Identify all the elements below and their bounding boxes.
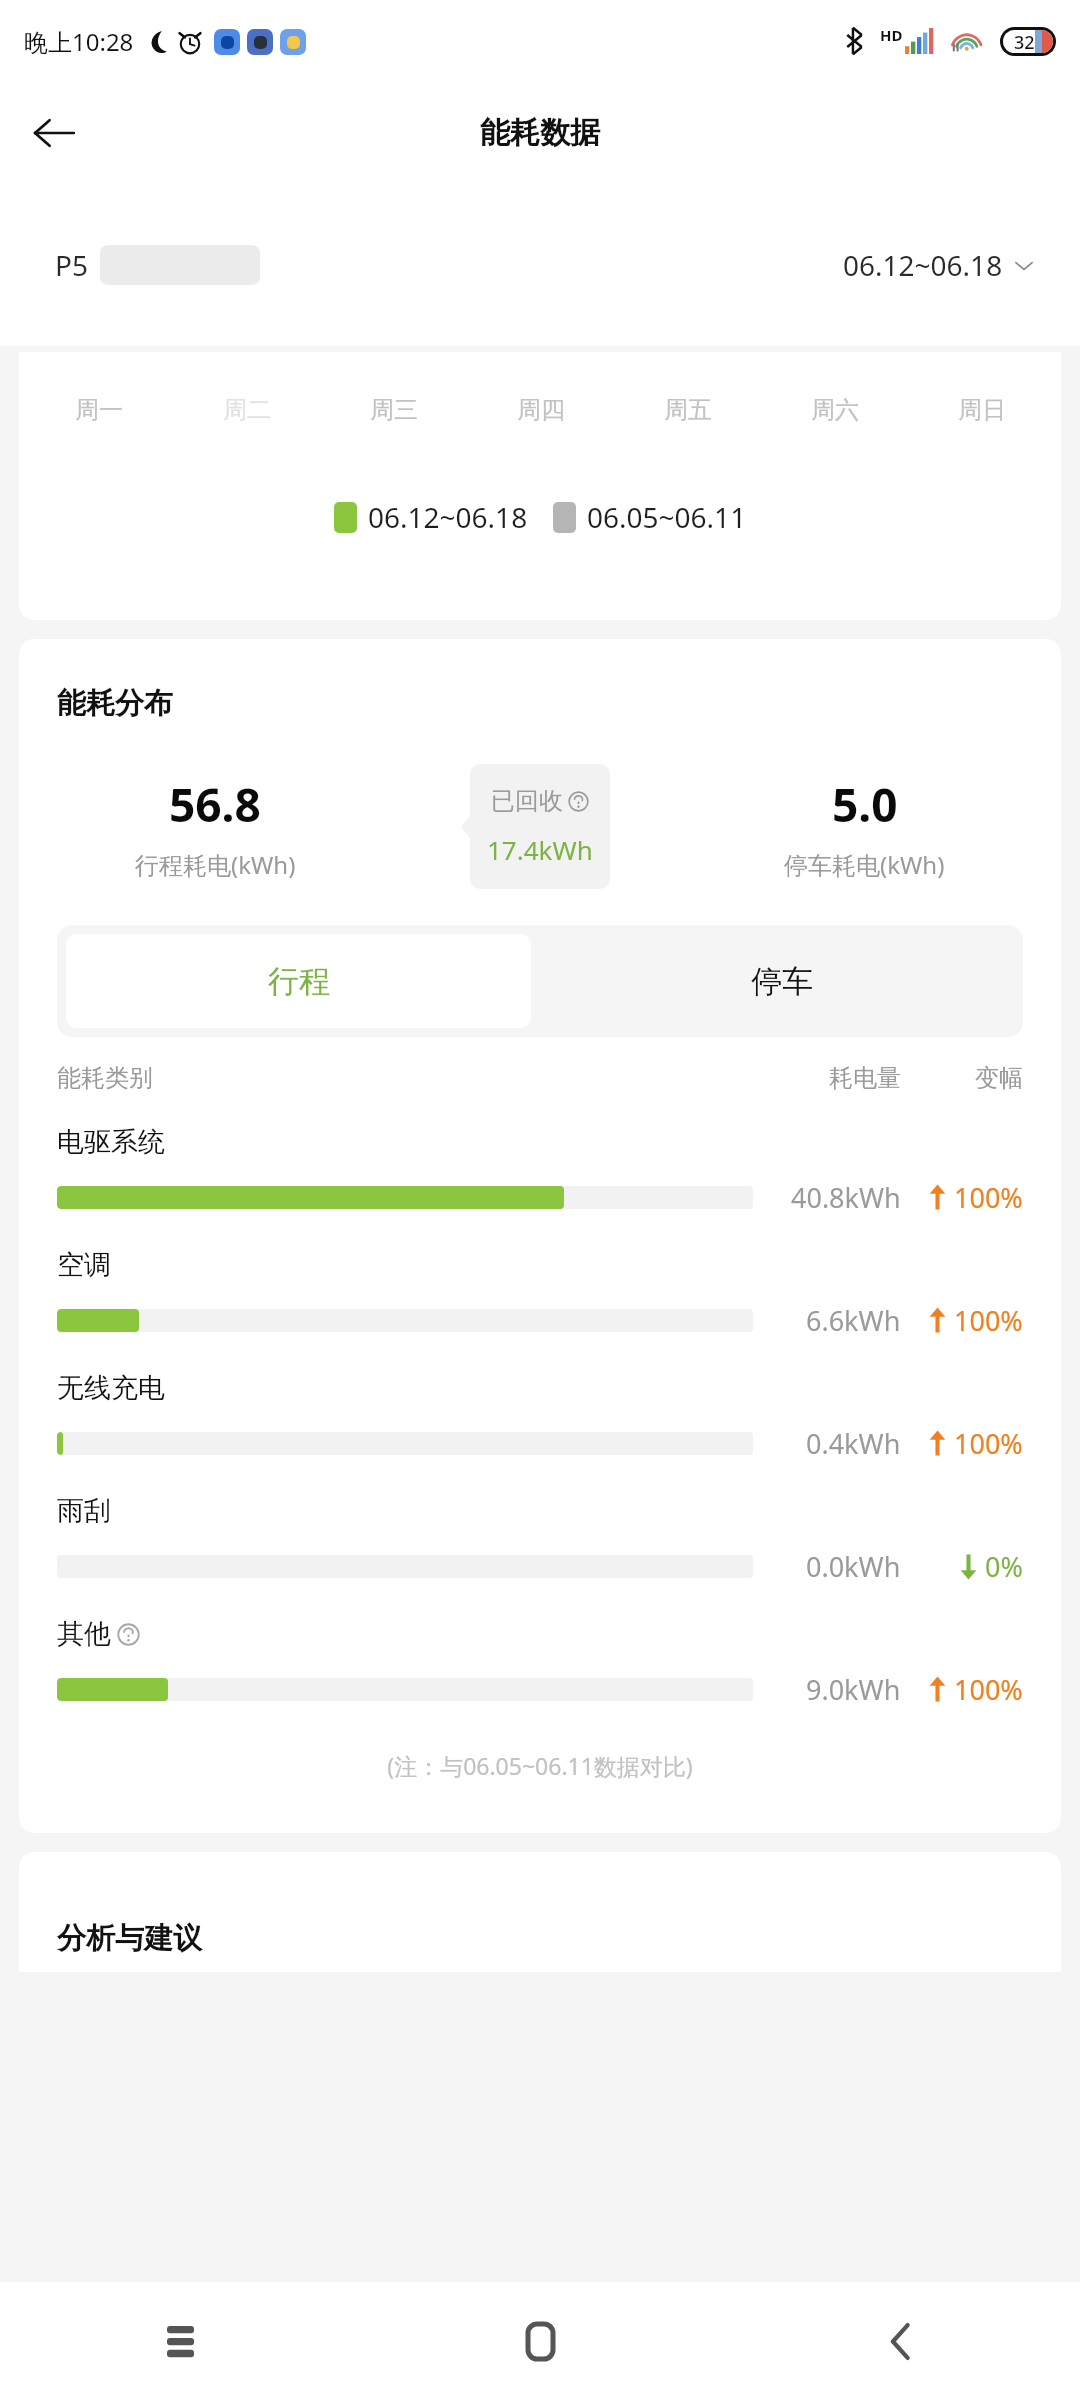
staticText: 6.6kWh [806, 1302, 901, 1339]
staticText: 停车 [751, 962, 813, 1001]
staticText: 17.4kWh [487, 832, 593, 867]
staticText: 能耗数据 [480, 114, 600, 152]
staticText: 06.12~06.18 [368, 498, 528, 536]
button[interactable]: 主屏幕 [360, 2282, 720, 2400]
staticText: 56.8 [169, 773, 261, 836]
staticText: HD [880, 25, 903, 45]
staticText: 9.0kWh [806, 1671, 901, 1708]
staticText: 变幅 [975, 1063, 1023, 1093]
staticText: 电驱系统 [57, 1125, 165, 1159]
button[interactable]: 最近任务 [0, 2282, 360, 2400]
staticText: 其他 [57, 1617, 111, 1651]
staticText: 行程 [268, 962, 330, 1001]
staticText: (注：与06.05~06.11数据对比) [57, 1750, 1023, 1781]
staticText: 06.05~06.11 [587, 498, 747, 536]
button[interactable]: 06.12~06.18 [843, 246, 1036, 284]
staticText: 100% [954, 1179, 1023, 1216]
staticText: 分析与建议 [57, 1920, 202, 1957]
staticText: 0.0kWh [806, 1548, 901, 1585]
staticText: 晚上10:28 [24, 25, 134, 58]
staticText: 能耗类别 [57, 1063, 753, 1093]
staticText: P5 [55, 246, 88, 284]
staticText: 100% [954, 1671, 1023, 1708]
staticText: 周六 [811, 395, 859, 425]
staticText: 100% [954, 1425, 1023, 1462]
button[interactable]: 周一 [25, 395, 173, 425]
button[interactable]: 返回 [20, 99, 88, 167]
button[interactable]: 停车 [540, 925, 1023, 1037]
staticText: 周三 [370, 395, 418, 425]
staticText: 周一 [75, 395, 123, 425]
button[interactable]: 周三 [320, 395, 467, 425]
staticText: 0.4kWh [806, 1425, 901, 1462]
staticText: 32 [1014, 30, 1035, 53]
staticText: 周五 [664, 395, 712, 425]
button[interactable]: 周二 [173, 395, 320, 425]
staticText: 0% [985, 1548, 1023, 1585]
button[interactable]: 周日 [908, 395, 1055, 425]
staticText: 100% [954, 1302, 1023, 1339]
staticText: 5.0 [832, 773, 898, 836]
staticText: 雨刮 [57, 1494, 111, 1528]
staticText: 周二 [223, 395, 271, 425]
staticText: 06.12~06.18 [843, 246, 1003, 284]
button[interactable]: 行程 [66, 934, 531, 1028]
staticText: 停车耗电(kWh) [784, 848, 945, 881]
button[interactable]: 周六 [761, 395, 908, 425]
button[interactable]: 周四 [467, 395, 614, 425]
staticText: 已回收 [491, 786, 563, 816]
staticText: 周日 [958, 395, 1006, 425]
staticText: 行程耗电(kWh) [135, 848, 296, 881]
staticText: 周四 [517, 395, 565, 425]
button[interactable]: 周五 [614, 395, 761, 425]
staticText: 能耗分布 [57, 685, 173, 722]
staticText: 无线充电 [57, 1371, 165, 1405]
button[interactable]: 返回 [720, 2282, 1080, 2400]
staticText: 耗电量 [829, 1063, 901, 1093]
staticText: 40.8kWh [791, 1179, 901, 1216]
staticText: 空调 [57, 1248, 111, 1282]
